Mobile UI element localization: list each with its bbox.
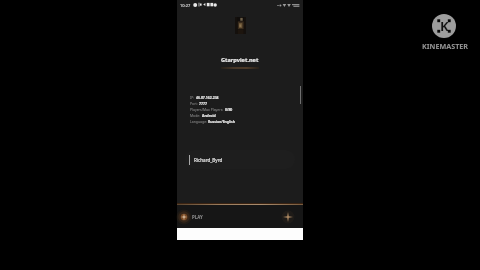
button[interactable]: Settings (280, 205, 296, 228)
staticText: Gtarpviet.net (221, 56, 259, 64)
staticText: PLAY (192, 214, 203, 220)
staticText: 8/80 (225, 107, 233, 112)
staticText: Language: (190, 119, 207, 124)
staticText: 10:27 (180, 3, 191, 8)
staticText: 46.87.162.234 (196, 95, 219, 100)
staticText: Richard_Byrd (194, 157, 223, 163)
button[interactable]: Richard_Byrd (185, 150, 295, 169)
staticText: Port: (190, 101, 198, 106)
staticText: Players/Max Players: (190, 107, 224, 112)
staticText: Android (202, 113, 216, 118)
staticText: KINEMASTER (422, 41, 468, 51)
staticText: Russian/English (208, 119, 236, 124)
staticText: Mode: (190, 113, 201, 118)
staticText: IP: (190, 95, 195, 100)
button[interactable]: PLAY (176, 205, 203, 228)
staticText: 7777 (199, 101, 207, 106)
staticText: K (440, 17, 449, 35)
